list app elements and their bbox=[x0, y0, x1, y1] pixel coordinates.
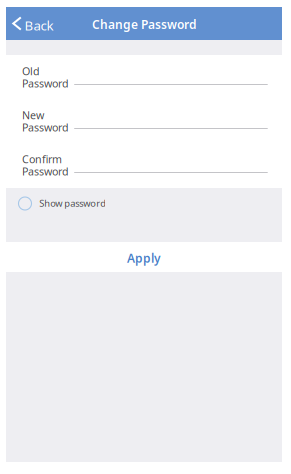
staticText: Password bbox=[22, 120, 69, 134]
staticText: Old bbox=[22, 64, 40, 78]
staticText: Password bbox=[22, 76, 69, 90]
staticText: Confirm bbox=[22, 152, 62, 166]
staticText: Show password bbox=[39, 197, 106, 209]
button[interactable]: Apply bbox=[84, 244, 204, 272]
staticText: Change Password bbox=[92, 16, 197, 32]
staticText: New bbox=[22, 108, 44, 122]
staticText: Password bbox=[22, 164, 69, 178]
staticText: Back bbox=[24, 16, 53, 34]
staticText: Apply bbox=[127, 250, 161, 266]
button[interactable]: Back bbox=[6, 7, 62, 40]
button[interactable]: Show password bbox=[6, 194, 282, 219]
